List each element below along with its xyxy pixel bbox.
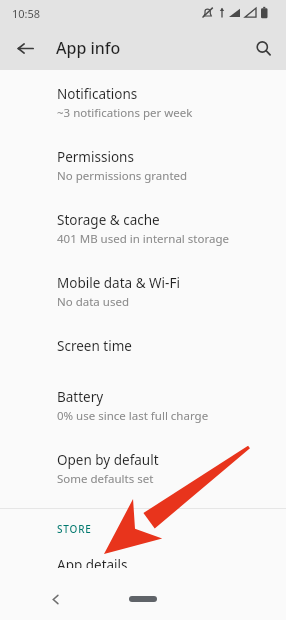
- staticText: App info: [56, 37, 121, 59]
- staticText: 401 MB used in internal storage: [57, 231, 229, 247]
- staticText: Storage & cache: [57, 211, 160, 229]
- button[interactable]: Open by default: [0, 441, 286, 497]
- staticText: No data used: [57, 294, 129, 310]
- staticText: Mobile data & Wi-Fi: [57, 274, 180, 292]
- staticText: Some defaults set: [57, 471, 154, 487]
- button[interactable]: Home: [126, 588, 160, 610]
- staticText: App details: [57, 556, 128, 568]
- staticText: Open by default: [57, 451, 159, 469]
- staticText: Notifications: [57, 85, 138, 103]
- staticText: Permissions: [57, 148, 134, 166]
- staticText: Battery: [57, 388, 104, 406]
- staticText: 0% use since last full charge: [57, 408, 209, 424]
- button[interactable]: Mobile data & Wi-Fi: [0, 264, 286, 320]
- staticText: ~3 notifications per week: [57, 105, 193, 121]
- button[interactable]: Battery: [0, 378, 286, 434]
- button[interactable]: Notifications: [0, 75, 286, 131]
- staticText: Screen time: [57, 337, 132, 355]
- staticText: STORE: [57, 522, 92, 536]
- staticText: No permissions granted: [57, 168, 188, 184]
- button[interactable]: Storage & cache: [0, 201, 286, 257]
- button[interactable]: Search: [244, 29, 282, 67]
- staticText: 10:58: [12, 6, 41, 21]
- button[interactable]: Back: [6, 29, 44, 67]
- button[interactable]: Permissions: [0, 138, 286, 194]
- button[interactable]: Back: [38, 582, 72, 616]
- button[interactable]: App details: [0, 546, 286, 578]
- button[interactable]: Screen time: [0, 327, 286, 365]
